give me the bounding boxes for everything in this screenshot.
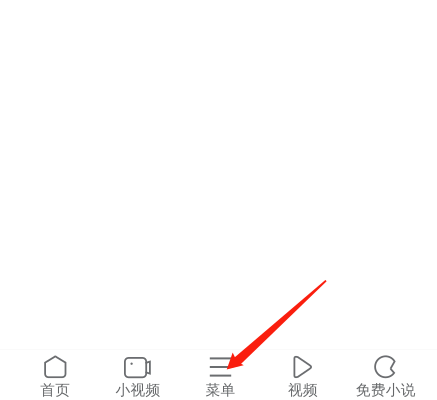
button[interactable]: 视频 <box>262 350 344 399</box>
staticText: 首页 <box>40 381 70 399</box>
staticText: 小视频 <box>115 381 160 399</box>
button[interactable]: 首页 <box>14 350 97 399</box>
button[interactable]: 小视频 <box>97 350 179 399</box>
staticText: 菜单 <box>205 381 235 399</box>
button[interactable]: 菜单 <box>179 350 262 399</box>
button[interactable]: 免费小说 <box>344 350 427 399</box>
staticText: 视频 <box>288 381 318 399</box>
staticText: 免费小说 <box>356 381 416 399</box>
